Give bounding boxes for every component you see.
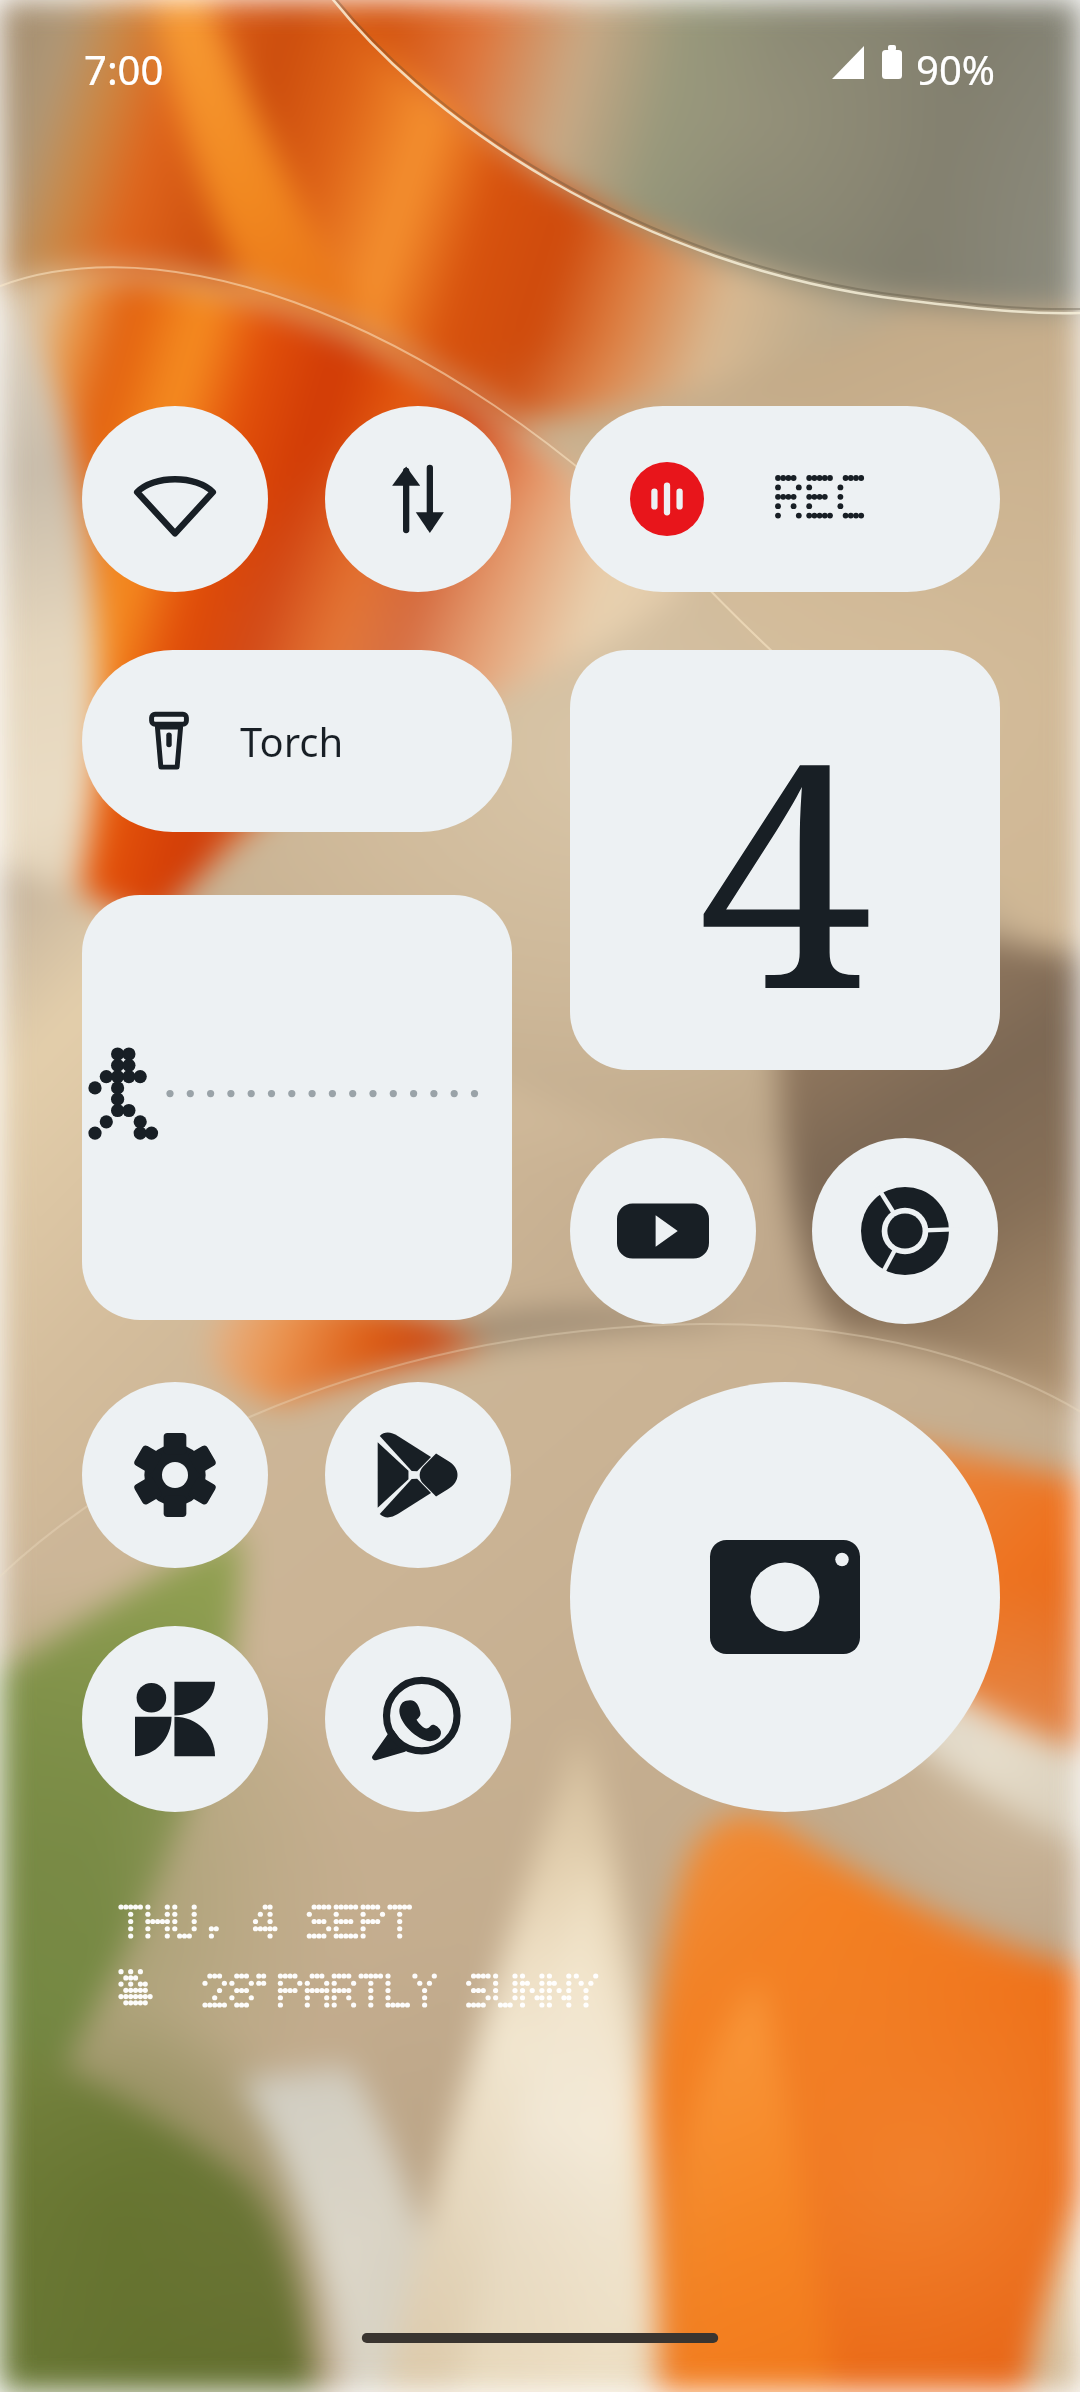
- button[interactable]: YouTube: [570, 1138, 756, 1324]
- staticText: 4: [698, 654, 873, 1070]
- button[interactable]: WhatsApp: [325, 1626, 511, 1812]
- button[interactable]: Mobile data: [325, 406, 511, 592]
- button[interactable]: Torch: [82, 650, 512, 832]
- staticText: 90%: [916, 42, 995, 96]
- button[interactable]: [570, 406, 1000, 592]
- button[interactable]: Camera: [570, 1382, 1000, 1812]
- button[interactable]: Play Store: [325, 1382, 511, 1568]
- button[interactable]: Settings: [82, 1382, 268, 1568]
- staticText: Torch: [240, 714, 344, 768]
- button[interactable]: Wi-Fi: [82, 406, 268, 592]
- staticText: 7:00: [84, 42, 164, 96]
- button[interactable]: Steps: [82, 895, 512, 1320]
- button[interactable]: Gallery: [82, 1626, 268, 1812]
- button[interactable]: 4: [570, 650, 1000, 1070]
- button[interactable]: Chrome: [812, 1138, 998, 1324]
